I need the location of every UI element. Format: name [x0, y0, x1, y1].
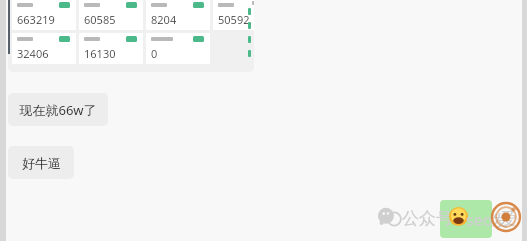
other: WeChat logo: [378, 207, 400, 227]
button[interactable]: 0: [146, 33, 210, 64]
staticText: 663219: [17, 12, 55, 27]
button[interactable]: 16130: [79, 33, 143, 64]
button[interactable]: 好牛逼: [8, 146, 74, 179]
staticText: 32406: [17, 46, 49, 61]
staticText: 公众号: [402, 208, 453, 229]
button[interactable]: 663219: [8, 0, 254, 72]
button[interactable]: 60585: [79, 0, 143, 30]
staticText: seo发: [466, 209, 509, 231]
staticText: 0: [151, 46, 158, 61]
button[interactable]: 32406: [12, 33, 76, 64]
other: Laughing emoji: [449, 207, 468, 226]
staticText: 50592: [218, 12, 250, 27]
button[interactable]: 663219: [12, 0, 76, 30]
staticText: 好牛逼: [22, 155, 61, 171]
staticText: 爱: [500, 209, 516, 229]
button[interactable]: 8204: [146, 0, 210, 30]
staticText: 现在就66w了: [19, 101, 97, 119]
button[interactable]: 50592: [213, 0, 254, 30]
button[interactable]: 现在就66w了: [8, 93, 108, 126]
staticText: 16130: [84, 46, 116, 61]
staticText: 60585: [84, 12, 116, 27]
staticText: 8204: [151, 12, 177, 27]
other: Brand stamp logo: [489, 200, 523, 234]
